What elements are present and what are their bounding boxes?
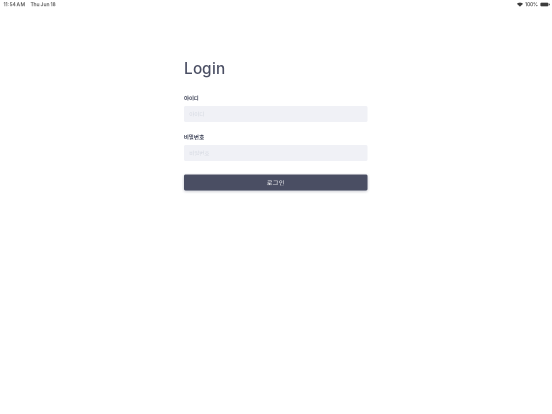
- staticText: 아이디: [184, 94, 199, 102]
- staticText: 아이디: [189, 110, 204, 118]
- staticText: 비밀번호: [184, 133, 204, 141]
- staticText: Login: [184, 59, 225, 78]
- staticText: 11:54 AM: [3, 1, 25, 7]
- staticText: 비밀번호: [189, 149, 209, 157]
- button[interactable]: 로그인: [184, 174, 367, 190]
- staticText: 로그인: [267, 178, 285, 187]
- staticText: Thu Jun 18: [30, 1, 55, 7]
- staticText: 100%: [525, 1, 538, 7]
